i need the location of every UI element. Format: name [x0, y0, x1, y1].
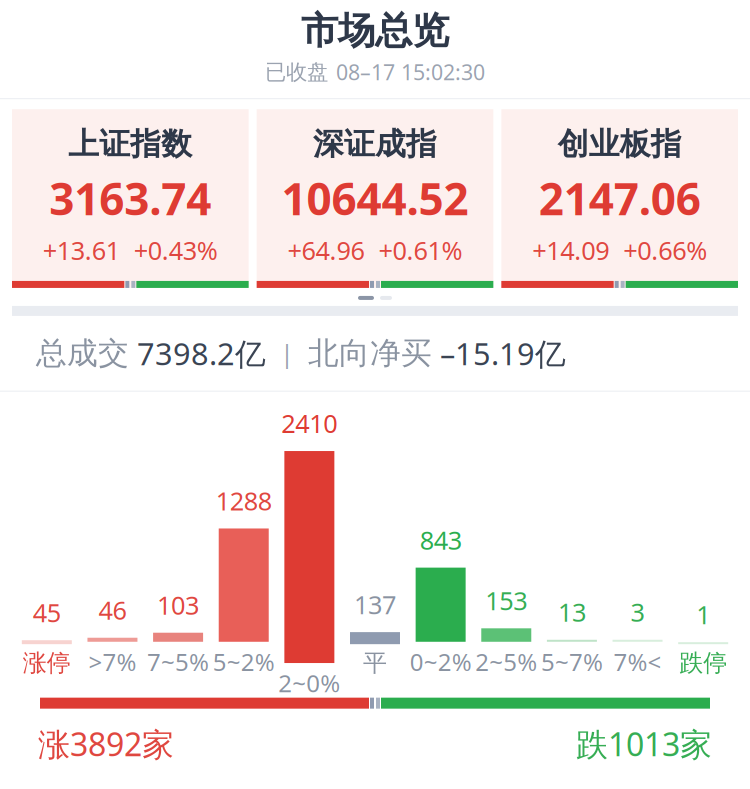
staticText: 北向净买 [308, 334, 432, 372]
staticText: –15.19亿 [432, 333, 566, 374]
staticText: +13.61 [43, 233, 120, 267]
staticText: 08–17 15:02:30 [336, 58, 485, 86]
staticText: 843 [420, 523, 462, 557]
staticText: 2~0% [278, 667, 340, 699]
staticText: 涨停 [23, 648, 71, 678]
staticText: 7%< [613, 646, 661, 678]
staticText: 涨3892家 [38, 723, 174, 765]
staticText: 13 [558, 595, 586, 629]
button[interactable]: 深证成指 [257, 109, 493, 288]
staticText: +0.61% [378, 233, 462, 267]
staticText: 10644.52 [281, 169, 468, 227]
staticText: 153 [485, 584, 527, 617]
button[interactable]: 创业板指 [501, 109, 738, 288]
staticText: 总成交 [36, 334, 129, 372]
staticText: >7% [88, 646, 136, 678]
staticText: 3 [630, 595, 644, 629]
staticText: +14.09 [532, 233, 609, 267]
staticText: 深证成指 [313, 125, 437, 163]
staticText: 已收盘 [265, 59, 328, 85]
staticText: 2~5% [475, 646, 537, 678]
staticText: 平 [363, 648, 387, 678]
staticText: | [266, 336, 308, 370]
staticText: +0.43% [134, 233, 218, 267]
staticText: 5~2% [213, 646, 275, 678]
staticText: 0~2% [410, 646, 472, 678]
staticText: 1 [696, 597, 710, 631]
staticText: 跌停 [679, 648, 727, 678]
staticText: 跌1013家 [576, 723, 712, 765]
staticText: 7~5% [147, 646, 209, 678]
staticText: 3163.74 [49, 169, 211, 227]
staticText: 创业板指 [558, 125, 682, 163]
staticText: 2410 [281, 406, 337, 440]
staticText: 2147.06 [539, 169, 701, 227]
button[interactable]: 上证指数 [12, 109, 249, 288]
staticText: 5~7% [541, 646, 603, 678]
staticText: 市场总览 [301, 8, 449, 54]
staticText: 7398.2亿 [129, 333, 266, 374]
staticText: 45 [33, 596, 61, 629]
staticText: 上证指数 [68, 125, 192, 163]
staticText: +0.66% [623, 233, 707, 267]
staticText: 103 [157, 588, 199, 622]
staticText: 46 [98, 593, 126, 627]
staticText: 137 [354, 587, 396, 621]
staticText: +64.96 [287, 233, 364, 267]
staticText: 1288 [216, 484, 272, 517]
